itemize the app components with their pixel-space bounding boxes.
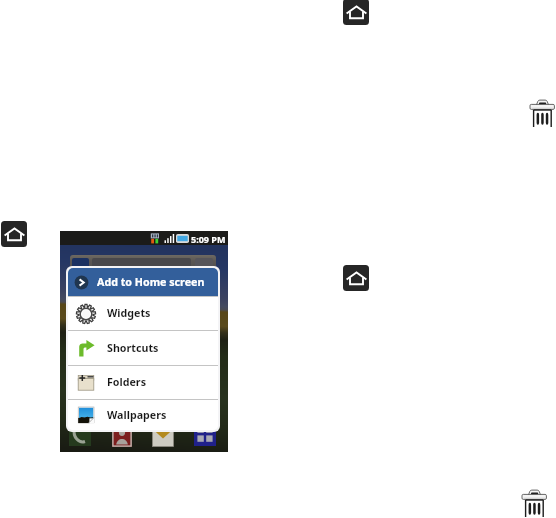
button[interactable]: Shortcuts: [68, 331, 218, 365]
button[interactable]: Delete: [521, 489, 547, 518]
staticText: Folders: [107, 375, 147, 390]
button[interactable]: Home: [343, 0, 369, 25]
button[interactable]: Add to Home screen: [68, 268, 218, 296]
button[interactable]: Home: [343, 265, 369, 291]
staticText: Widgets: [107, 306, 151, 321]
button[interactable]: App: [152, 429, 174, 451]
button[interactable]: Folders: [68, 366, 218, 399]
button[interactable]: Wallpapers: [68, 400, 218, 430]
button[interactable]: Widgets: [68, 297, 218, 330]
button[interactable]: Delete: [529, 99, 555, 128]
button[interactable]: App: [194, 428, 216, 450]
staticText: Wallpapers: [107, 408, 167, 423]
button[interactable]: App: [112, 429, 132, 449]
button[interactable]: App: [69, 428, 91, 450]
button[interactable]: Home: [1, 221, 27, 247]
staticText: 5:09 PM: [191, 233, 226, 245]
staticText: Shortcuts: [107, 341, 159, 356]
staticText: Add to Home screen: [97, 275, 205, 290]
